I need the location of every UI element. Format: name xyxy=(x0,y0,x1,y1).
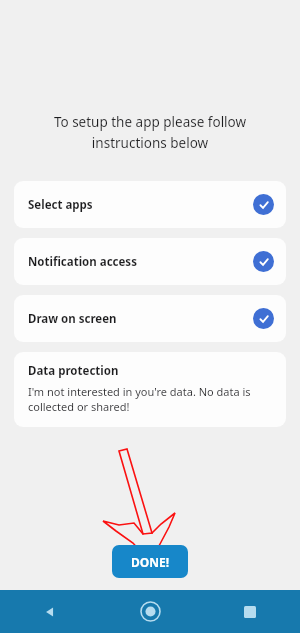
button[interactable]: Draw on screen xyxy=(14,295,286,342)
button[interactable]: Home xyxy=(100,590,200,633)
staticText: I'm not interested in you're data. No da… xyxy=(28,384,251,414)
button[interactable]: Recent apps xyxy=(200,590,300,633)
button[interactable]: Back xyxy=(0,590,100,633)
button[interactable]: Select apps xyxy=(14,181,286,228)
staticText: Select apps xyxy=(28,197,93,213)
button[interactable]: Data protection xyxy=(14,352,286,427)
staticText: Data protection xyxy=(28,363,119,379)
staticText: Notification access xyxy=(28,254,137,270)
staticText: To setup the app please follow instructi… xyxy=(16,113,284,152)
button[interactable]: DONE! xyxy=(112,545,188,578)
staticText: Draw on screen xyxy=(28,311,117,327)
staticText: DONE! xyxy=(131,554,170,570)
button[interactable]: Notification access xyxy=(14,238,286,285)
